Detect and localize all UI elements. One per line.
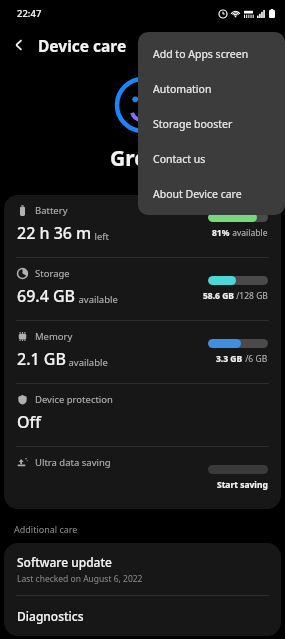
staticText: 22 h 36 m bbox=[17, 222, 92, 244]
staticText: Automation bbox=[153, 82, 212, 96]
button[interactable]: Automation bbox=[138, 71, 285, 106]
staticText: 81% bbox=[212, 227, 230, 239]
staticText: available bbox=[66, 356, 108, 369]
button[interactable]: About Device care bbox=[138, 176, 285, 211]
button[interactable]: Memory bbox=[4, 321, 281, 383]
staticText: Battery bbox=[35, 204, 68, 217]
staticText: Great! bbox=[110, 144, 175, 173]
button[interactable]: Contact us bbox=[138, 141, 285, 176]
staticText: Software update bbox=[17, 554, 112, 570]
staticText: Diagnostics bbox=[17, 608, 84, 624]
staticText: /128 GB bbox=[234, 290, 268, 302]
button[interactable]: Ultra data saving bbox=[4, 447, 281, 509]
staticText: Device care bbox=[38, 35, 127, 56]
staticText: Ultra data saving bbox=[35, 456, 111, 469]
staticText: 2.1 GB bbox=[17, 348, 66, 370]
staticText: Storage booster bbox=[153, 117, 233, 131]
button[interactable]: Battery bbox=[4, 195, 281, 257]
staticText: Device protection bbox=[35, 393, 113, 406]
button[interactable]: Device protection bbox=[4, 384, 281, 446]
staticText: available bbox=[230, 227, 268, 239]
button[interactable]: Back bbox=[0, 26, 38, 64]
button[interactable]: Diagnostics bbox=[4, 596, 281, 636]
staticText: 69.4 GB bbox=[17, 285, 76, 307]
staticText: 58.6 GB bbox=[203, 290, 234, 302]
staticText: 22:47 bbox=[17, 7, 42, 20]
button[interactable]: Storage bbox=[4, 258, 281, 320]
button[interactable]: Software update bbox=[4, 543, 281, 595]
staticText: Additional care bbox=[14, 523, 78, 535]
staticText: left bbox=[92, 230, 109, 243]
button[interactable]: Storage booster bbox=[138, 106, 285, 141]
staticText: Last checked on August 6, 2022 bbox=[17, 573, 143, 585]
staticText: /6 GB bbox=[243, 353, 268, 365]
staticText: Start saving bbox=[217, 479, 268, 491]
button[interactable]: Add to Apps screen bbox=[138, 36, 285, 71]
staticText: About Device care bbox=[153, 187, 242, 201]
staticText: Add to Apps screen bbox=[153, 47, 249, 61]
staticText: Off bbox=[17, 411, 41, 433]
staticText: Contact us bbox=[153, 152, 206, 166]
staticText: Storage bbox=[35, 267, 70, 280]
staticText: available bbox=[76, 293, 118, 306]
staticText: 3.3 GB bbox=[216, 353, 243, 365]
staticText: Memory bbox=[35, 330, 73, 343]
